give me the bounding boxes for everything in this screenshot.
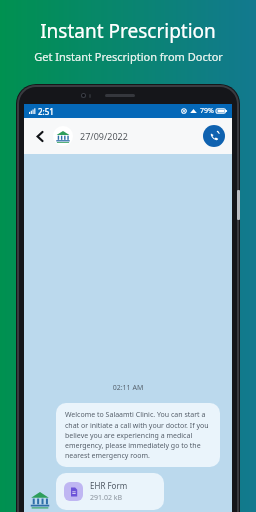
staticText: Instant Prescription bbox=[40, 18, 216, 44]
button[interactable]: EHR Form bbox=[56, 473, 164, 510]
staticText: 02:11 AM bbox=[24, 383, 232, 393]
staticText: EHR Form bbox=[90, 480, 128, 491]
button[interactable]: Welcome to Salaamti Clinic. You can star… bbox=[56, 403, 220, 467]
staticText: Welcome to Salaamti Clinic. You can star… bbox=[65, 410, 211, 460]
staticText: 27/09/2022 bbox=[80, 130, 128, 142]
button[interactable]: Call doctor bbox=[203, 125, 225, 147]
staticText: 2:51 bbox=[38, 106, 54, 117]
staticText: 79% bbox=[200, 106, 214, 116]
button[interactable]: Back bbox=[31, 127, 49, 145]
staticText: Get Instant Prescription from Doctor bbox=[34, 49, 223, 64]
staticText: 291.02 kB bbox=[90, 493, 123, 503]
